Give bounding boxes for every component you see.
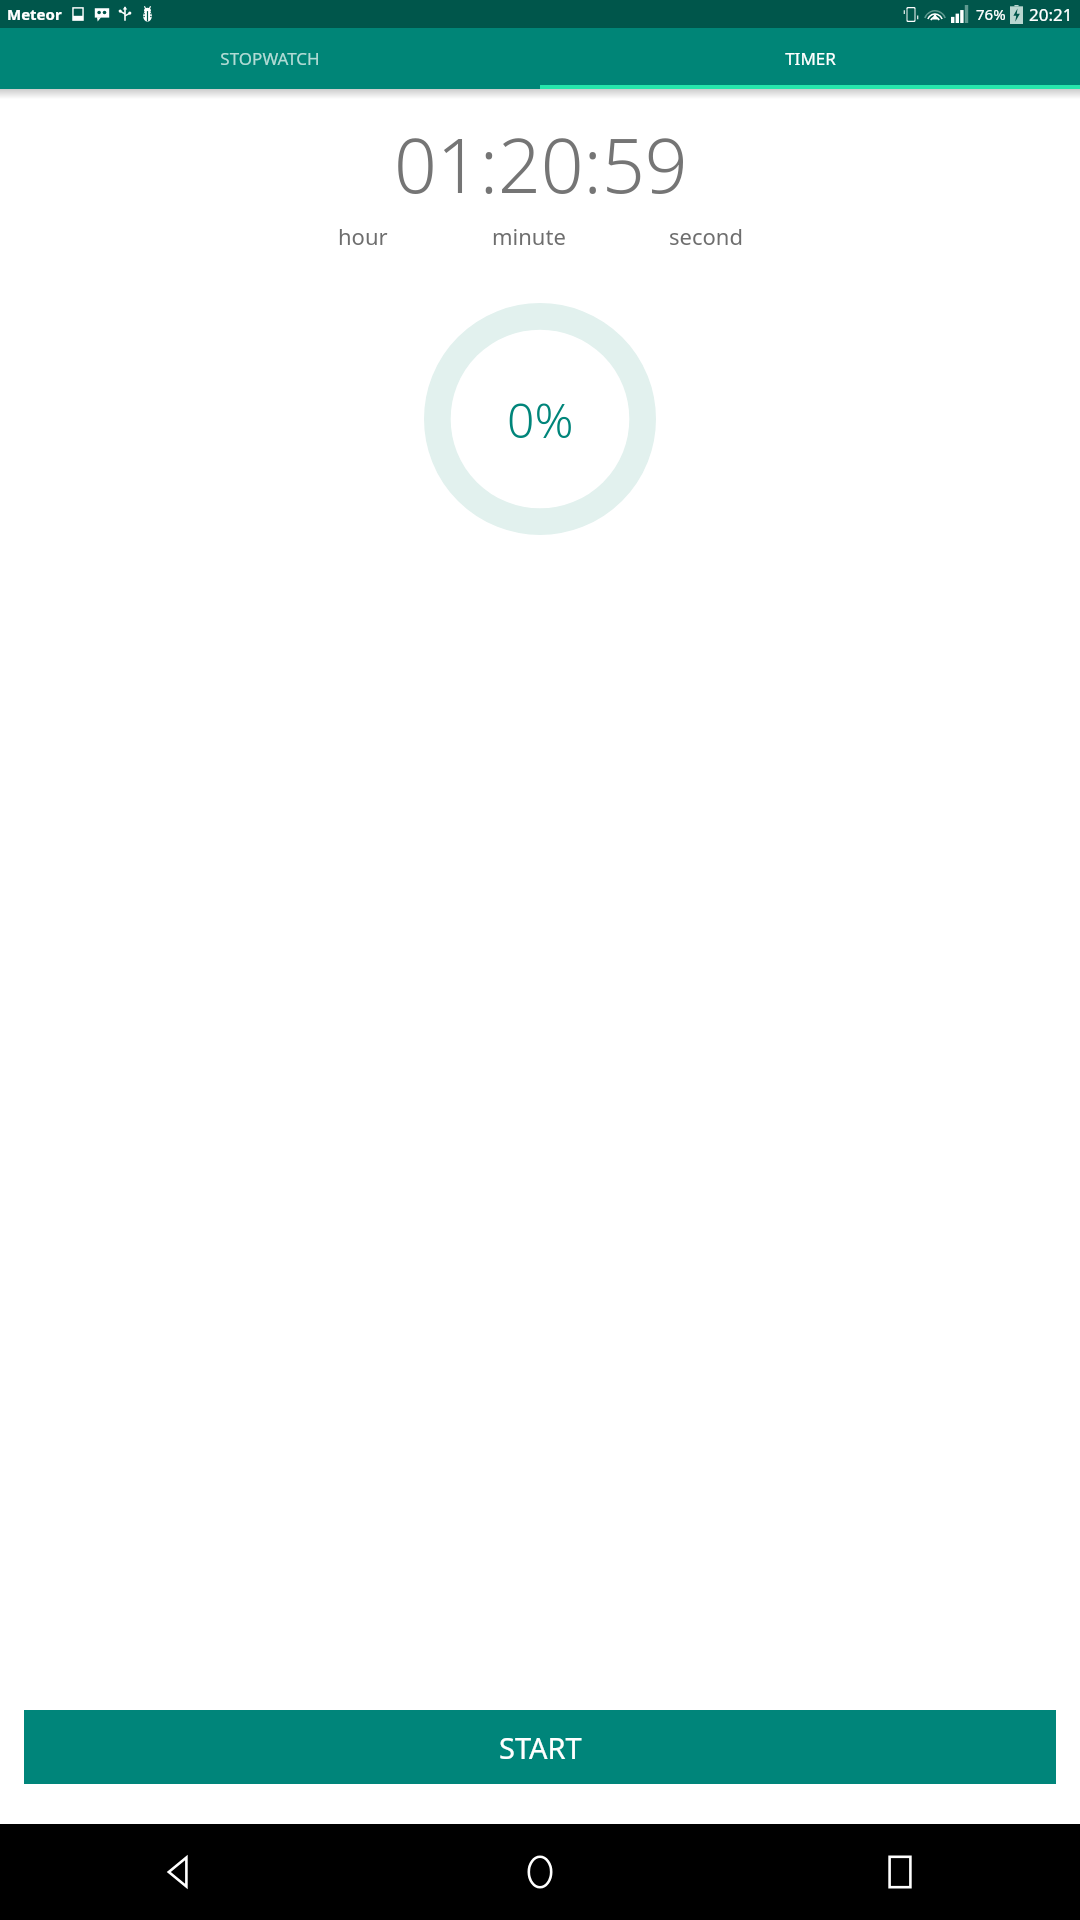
staticText: minute [492,221,566,251]
button[interactable]: TIMER [540,28,1080,89]
staticText: TIMER [785,47,836,70]
staticText: hour [338,221,388,251]
staticText: 20:21 [1029,3,1073,26]
staticText: 76% [976,4,1006,24]
button[interactable]: STOPWATCH [0,28,540,89]
button[interactable]: START [24,1710,1056,1784]
staticText: START [499,1728,582,1767]
staticText: 0% [507,387,574,452]
staticText: second [669,221,743,251]
button[interactable]: Recent apps [720,1824,1080,1920]
staticText: Meteor [7,4,62,24]
staticText: STOPWATCH [220,47,320,70]
button[interactable]: Back [0,1824,360,1920]
button[interactable]: Home [360,1824,720,1920]
staticText: 01:20:59 [394,113,688,215]
